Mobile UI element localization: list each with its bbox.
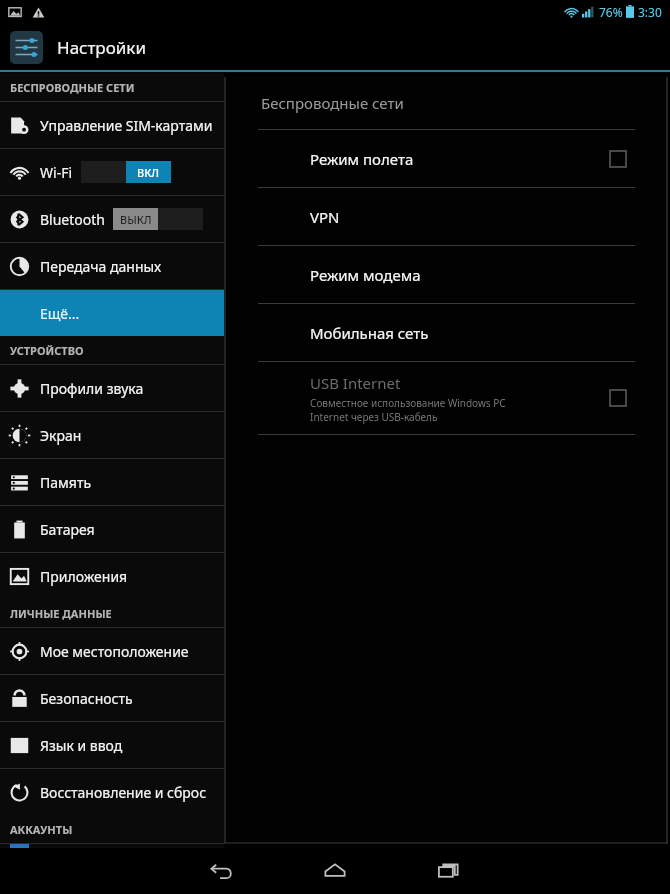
button[interactable]: Режим модема — [225, 246, 668, 303]
staticText: Мое местоположение — [40, 642, 189, 661]
button[interactable]: Settings — [10, 31, 43, 64]
staticText: ЛИЧНЫЕ ДАННЫЕ — [10, 606, 112, 621]
staticText: Совместное использование Windows PC — [310, 396, 506, 410]
staticText: Мобильная сеть — [310, 323, 429, 343]
button[interactable]: Back — [186, 848, 256, 894]
button[interactable]: USB Internet — [225, 362, 668, 434]
staticText: Приложения — [40, 567, 128, 586]
staticText: USB Internet — [310, 373, 401, 393]
staticText: Bluetooth — [40, 210, 105, 229]
button[interactable]: Язык и ввод — [0, 722, 224, 768]
staticText: Режим полета — [310, 149, 414, 169]
button[interactable]: Передача данных — [0, 243, 224, 289]
button[interactable]: Мобильная сеть — [225, 304, 668, 361]
button[interactable]: Режим полета — [225, 130, 668, 187]
button[interactable]: Мое местоположение — [0, 628, 224, 674]
button[interactable]: Home — [300, 848, 370, 894]
button[interactable]: Память — [0, 459, 224, 505]
staticText: Батарея — [40, 520, 95, 539]
staticText: 76% — [599, 4, 623, 20]
button[interactable]: Bluetooth — [0, 196, 224, 242]
button[interactable]: Toggle off — [113, 208, 203, 230]
staticText: Управление SIM-картами — [40, 116, 213, 135]
staticText: Режим модема — [310, 265, 421, 285]
button[interactable]: Безопасность — [0, 675, 224, 721]
staticText: Настройки — [57, 36, 146, 59]
staticText: ВКЛ — [137, 165, 160, 180]
staticText: Wi-Fi — [40, 163, 73, 182]
staticText: АККАУНТЫ — [10, 822, 73, 837]
button[interactable]: Checkbox — [604, 384, 632, 412]
staticText: Восстановление и сброс — [40, 783, 207, 802]
staticText: Память — [40, 473, 92, 492]
button[interactable]: VPN — [225, 188, 668, 245]
staticText: VPN — [310, 207, 340, 227]
staticText: Ещё... — [40, 304, 80, 323]
button[interactable]: Wi-Fi — [0, 149, 224, 195]
staticText: УСТРОЙСТВО — [10, 343, 84, 358]
button[interactable]: Экран — [0, 412, 224, 458]
button[interactable]: Checkbox — [604, 145, 632, 173]
button[interactable]: Батарея — [0, 506, 224, 552]
button[interactable]: Toggle on — [81, 161, 171, 183]
button[interactable]: Ещё... — [0, 290, 224, 336]
staticText: Экран — [40, 426, 82, 445]
button[interactable]: Приложения — [0, 553, 224, 599]
staticText: 3:30 — [638, 4, 662, 20]
button[interactable]: Профили звука — [0, 365, 224, 411]
staticText: Безопасность — [40, 689, 133, 708]
staticText: Язык и ввод — [40, 736, 123, 755]
staticText: Профили звука — [40, 379, 144, 398]
button[interactable]: 8 — [0, 844, 224, 848]
button[interactable]: Recent apps — [414, 848, 484, 894]
staticText: Передача данных — [40, 257, 162, 276]
button[interactable]: Управление SIM-картами — [0, 102, 224, 148]
staticText: БЕСПРОВОДНЫЕ СЕТИ — [10, 80, 135, 95]
button[interactable]: Восстановление и сброс — [0, 769, 224, 815]
staticText: ВЫКЛ — [120, 212, 152, 227]
staticText: Internet через USB-кабель — [310, 410, 438, 424]
staticText: Беспроводные сети — [261, 93, 404, 113]
